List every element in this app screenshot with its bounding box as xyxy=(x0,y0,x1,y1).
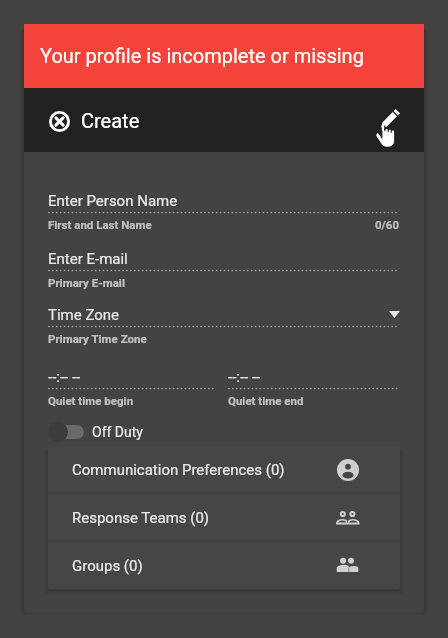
staticText: Communication Preferences (0) xyxy=(72,461,285,479)
staticText: Groups (0) xyxy=(72,557,143,575)
staticText: 0/60 xyxy=(375,218,400,231)
staticText: Primary Time Zone xyxy=(48,332,147,345)
staticText: Enter Person Name xyxy=(48,192,178,210)
staticText: Enter E-mail xyxy=(48,250,128,268)
staticText: Primary E-mail xyxy=(48,276,125,289)
staticText: --:-- -- xyxy=(228,368,261,386)
button[interactable]: Your profile is incomplete or missing xyxy=(24,24,424,88)
staticText: Time Zone xyxy=(48,306,120,324)
button[interactable]: Time Zone xyxy=(48,304,400,345)
staticText: Quiet time end xyxy=(228,394,304,407)
button[interactable]: Groups (0) xyxy=(48,542,400,589)
staticText: Quiet time begin xyxy=(48,394,134,407)
button[interactable]: Create xyxy=(41,88,152,152)
button[interactable]: Enter Person Name xyxy=(48,190,400,231)
button[interactable]: Edit xyxy=(368,88,424,152)
button[interactable]: --:-- -- xyxy=(228,366,400,407)
staticText: Create xyxy=(81,109,140,132)
button[interactable]: --:-- -- xyxy=(48,366,218,407)
staticText: Off Duty xyxy=(92,424,143,440)
staticText: --:-- -- xyxy=(48,368,81,386)
staticText: First and Last Name xyxy=(48,218,152,231)
button[interactable]: Off Duty xyxy=(48,418,159,446)
staticText: Your profile is incomplete or missing xyxy=(40,44,364,67)
staticText: Response Teams (0) xyxy=(72,509,210,527)
button[interactable]: Communication Preferences (0) xyxy=(48,446,400,493)
button[interactable]: Response Teams (0) xyxy=(48,494,400,541)
button[interactable]: Enter E-mail xyxy=(48,248,400,289)
